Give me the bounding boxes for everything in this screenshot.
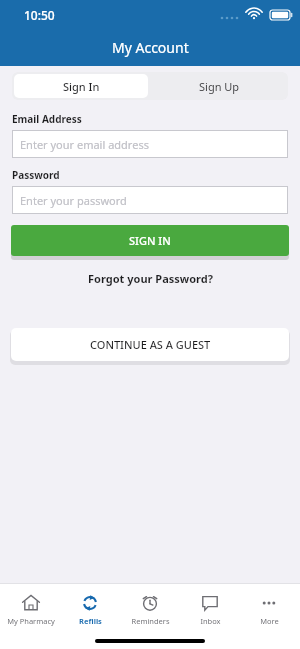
button[interactable]: Reminders (121, 591, 179, 628)
button[interactable]: My Pharmacy (2, 591, 60, 628)
button[interactable]: CONTINUE AS A GUEST (11, 328, 289, 361)
button[interactable]: Enter your email address (12, 130, 288, 158)
button[interactable]: Inbox (181, 591, 239, 628)
staticText: Enter your password (20, 193, 127, 208)
staticText: SIGN IN (129, 233, 171, 248)
staticText: More (260, 616, 279, 626)
staticText: Email Address (12, 112, 82, 126)
staticText: Inbox (200, 616, 221, 626)
staticText: My Account (112, 38, 189, 57)
staticText: Forgot your Password? (88, 271, 213, 286)
staticText: Sign Up (199, 79, 240, 94)
staticText: 10:50 (24, 7, 55, 23)
staticText: Sign In (63, 79, 100, 94)
button[interactable]: Forgot your Password? (0, 271, 300, 286)
button[interactable]: Sign In (14, 74, 148, 98)
button[interactable]: SIGN IN (11, 225, 289, 256)
staticText: Enter your email address (20, 137, 149, 152)
staticText: Password (12, 168, 60, 182)
button[interactable]: More (240, 591, 298, 628)
staticText: Reminders (131, 616, 170, 626)
staticText: Refills (79, 616, 102, 626)
button[interactable]: Enter your password (12, 186, 288, 214)
button[interactable]: Sign Up (150, 72, 288, 100)
button[interactable]: Refills (61, 591, 119, 628)
staticText: CONTINUE AS A GUEST (90, 337, 211, 352)
staticText: My Pharmacy (7, 616, 55, 626)
